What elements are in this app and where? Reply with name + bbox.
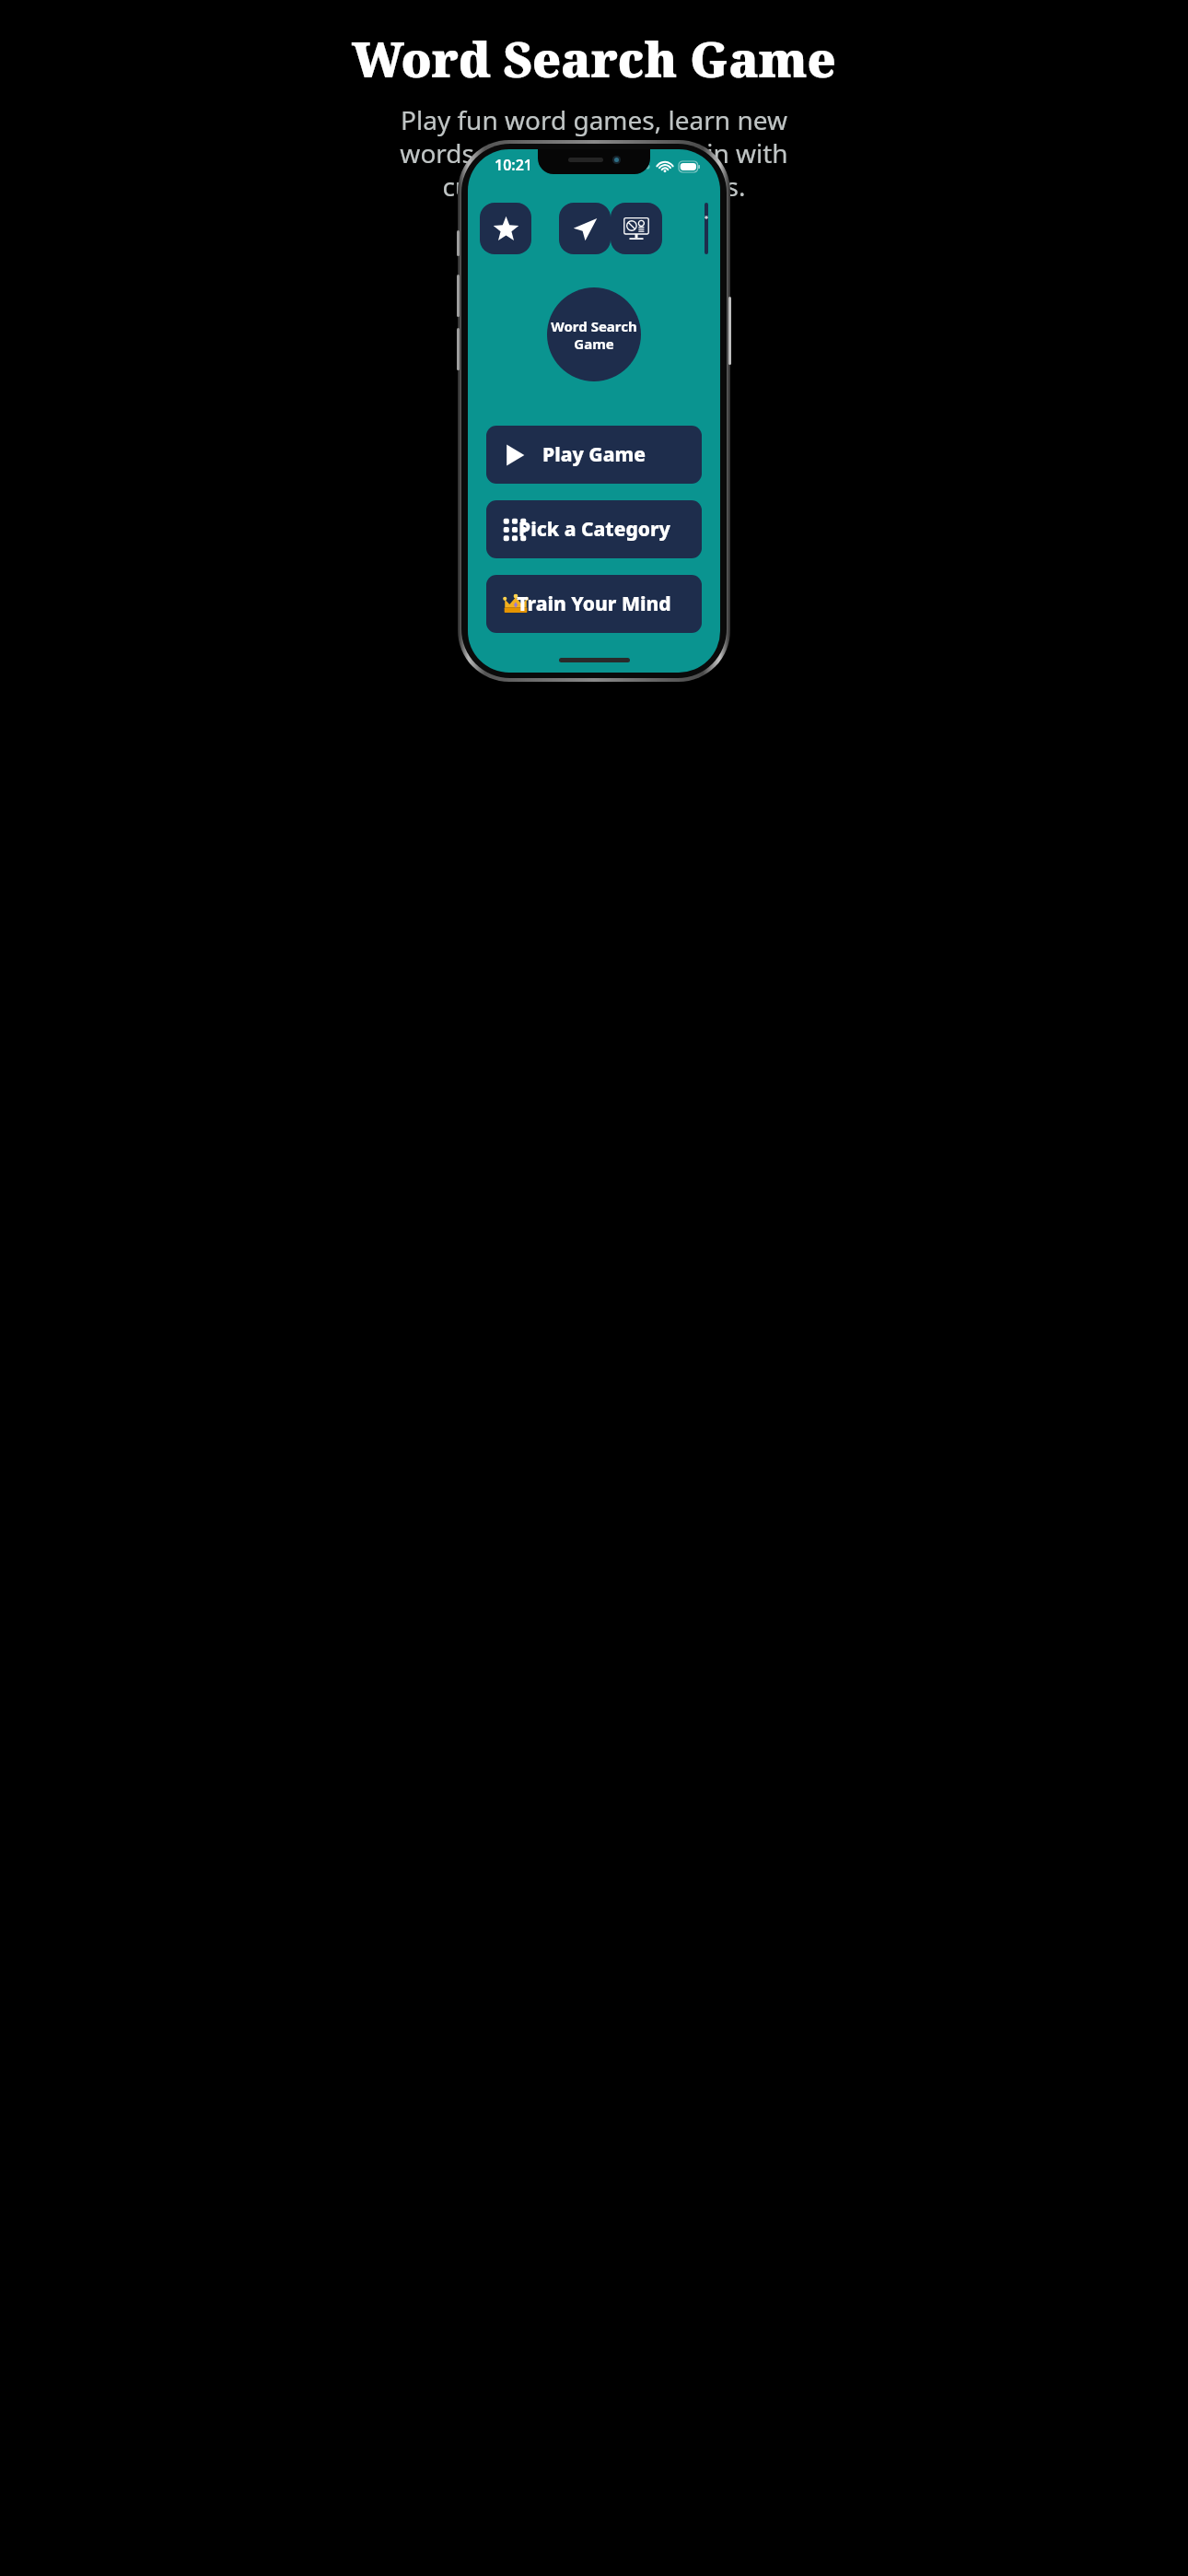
staticText: Play fun word games, learn new words, an…	[400, 102, 788, 204]
button[interactable]: Word Search Game	[547, 287, 641, 381]
button[interactable]: Settings	[705, 203, 708, 254]
button[interactable]: Train Your Mind	[486, 575, 702, 633]
button[interactable]: Pick a Category	[486, 500, 702, 558]
button[interactable]: Remove ads	[611, 203, 662, 254]
button[interactable]: Share	[559, 203, 611, 254]
staticText: Train Your Mind	[517, 591, 671, 617]
staticText: Pick a Category	[518, 516, 670, 543]
staticText: 10:21	[495, 155, 533, 175]
staticText: Play Game	[542, 441, 646, 468]
staticText: Word Search Game	[551, 317, 637, 353]
button[interactable]: Favorites	[480, 203, 531, 254]
staticText: Word Search Game	[352, 26, 836, 91]
button[interactable]: Play Game	[486, 426, 702, 484]
